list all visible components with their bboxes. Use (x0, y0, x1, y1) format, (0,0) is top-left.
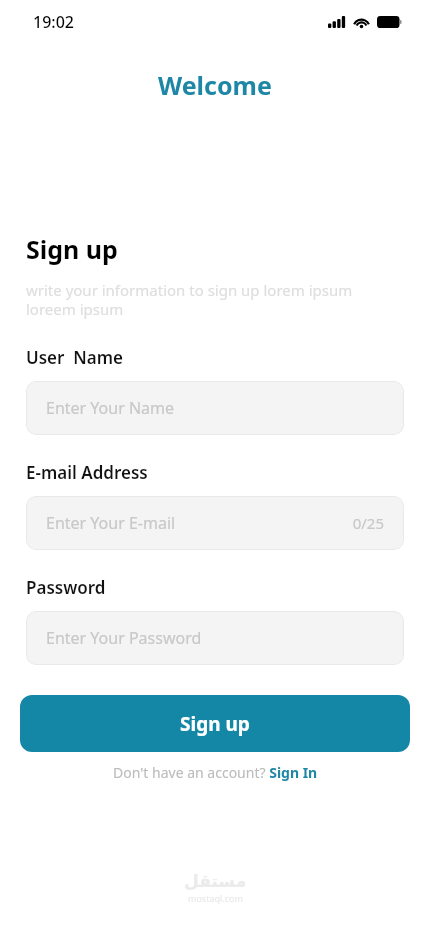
staticText: mostaql.com (188, 892, 243, 904)
other: Battery (377, 16, 402, 28)
staticText: E-mail Address (26, 461, 148, 484)
staticText: مستقل (184, 871, 247, 891)
button[interactable]: Enter Your E-mail (26, 496, 404, 550)
staticText: 0/25 (352, 513, 384, 533)
staticText: write your information to sign up lorem … (26, 280, 353, 319)
staticText: Enter Your E-mail (46, 512, 176, 534)
staticText: 19:02 (33, 11, 74, 33)
staticText: Enter Your Password (46, 627, 202, 649)
other: Wi-Fi (353, 16, 370, 28)
staticText: Sign up (180, 711, 250, 737)
staticText: Enter Your Name (46, 397, 175, 419)
button[interactable]: Enter Your Name (26, 381, 404, 435)
staticText: Don't have an account? Sign In (113, 763, 318, 782)
staticText: User Name (26, 346, 123, 369)
button[interactable]: Don't have an account? Sign In (105, 761, 326, 784)
staticText: Password (26, 576, 106, 599)
button[interactable]: Sign up (20, 695, 410, 752)
button[interactable]: Enter Your Password (26, 611, 404, 665)
other: Cellular signal (328, 16, 346, 28)
staticText: Welcome (158, 68, 272, 102)
staticText: Sign up (26, 232, 118, 266)
